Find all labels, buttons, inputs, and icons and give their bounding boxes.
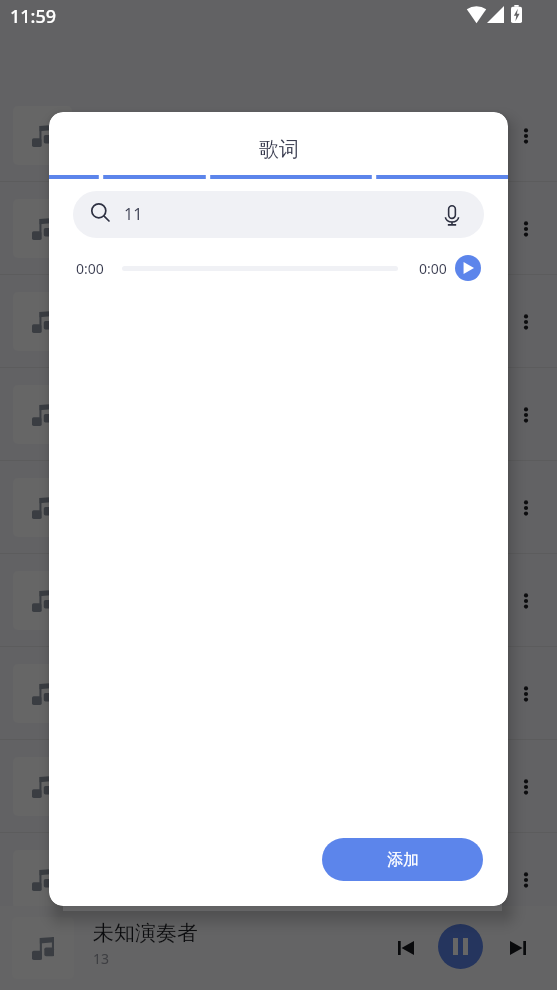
button[interactable]: More options bbox=[505, 673, 547, 715]
button[interactable]: More options bbox=[0, 554, 557, 647]
button[interactable]: More options bbox=[0, 740, 557, 833]
button[interactable]: Next track bbox=[498, 928, 538, 968]
button[interactable]: More options bbox=[0, 833, 557, 926]
button[interactable]: 未知演奏者 bbox=[0, 906, 557, 990]
button[interactable]: More options bbox=[0, 275, 557, 368]
button[interactable]: More options bbox=[505, 394, 547, 436]
button[interactable]: More options bbox=[505, 208, 547, 250]
button[interactable]: 11 bbox=[73, 191, 484, 238]
staticText: 11 bbox=[124, 203, 143, 225]
staticText: 13 bbox=[93, 949, 110, 968]
staticText: 歌词 bbox=[259, 137, 299, 162]
button[interactable]: More options bbox=[505, 859, 547, 901]
staticText: 未知演奏者 bbox=[93, 920, 198, 946]
button[interactable]: More options bbox=[0, 89, 557, 182]
button[interactable]: Previous track bbox=[386, 928, 426, 968]
button[interactable]: Play bbox=[455, 255, 481, 281]
button[interactable]: More options bbox=[505, 115, 547, 157]
button[interactable]: More options bbox=[0, 926, 557, 990]
button[interactable]: More options bbox=[505, 487, 547, 529]
staticText: 0:00 bbox=[76, 259, 104, 278]
button[interactable]: Pause bbox=[438, 924, 483, 969]
button[interactable]: More options bbox=[0, 647, 557, 740]
staticText: 11:59 bbox=[10, 4, 57, 29]
staticText: 添加 bbox=[387, 850, 419, 870]
button[interactable]: 添加 bbox=[322, 838, 483, 881]
button[interactable]: More options bbox=[505, 766, 547, 808]
button[interactable]: More options bbox=[505, 580, 547, 622]
button[interactable]: More options bbox=[0, 182, 557, 275]
button[interactable]: More options bbox=[0, 368, 557, 461]
button[interactable]: More options bbox=[505, 301, 547, 343]
button[interactable]: More options bbox=[0, 461, 557, 554]
staticText: 0:00 bbox=[419, 259, 447, 278]
button[interactable]: More options bbox=[505, 952, 547, 990]
button[interactable]: Voice search bbox=[440, 203, 464, 227]
